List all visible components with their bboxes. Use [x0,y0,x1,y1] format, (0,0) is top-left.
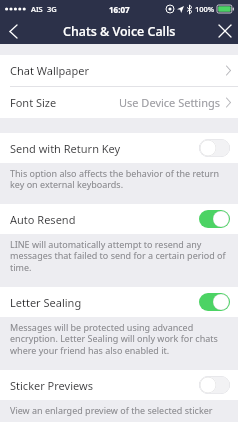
staticText: 3G [47,4,57,14]
button[interactable]: Font Size [0,87,238,118]
staticText: Auto Resend [10,212,76,227]
button[interactable]: On [199,210,230,228]
staticText: Send with Return Key [10,141,121,156]
button[interactable]: Sticker Previews [0,370,238,400]
button[interactable]: Send with Return Key [0,133,238,163]
button[interactable]: Chat Wallpaper [0,55,238,86]
staticText: Chats & Voice Calls [63,23,176,40]
staticText: Letter Sealing [10,295,82,310]
button[interactable]: Letter Sealing [0,287,238,317]
staticText: Chat Wallpaper [10,63,90,78]
staticText: Font Size [10,95,57,110]
button[interactable]: Off [199,376,230,394]
staticText: Messages will be protected using advance… [10,321,228,357]
staticText: AIS [31,4,43,14]
staticText: Use Device Settings [119,95,221,110]
button[interactable]: Auto Resend [0,204,238,234]
button[interactable]: Close [212,18,238,44]
staticText: 16:07 [109,4,130,15]
staticText: View an enlarged preview of the selected… [10,404,228,418]
button[interactable]: Off [199,139,230,157]
staticText: Sticker Previews [10,378,93,393]
button[interactable]: Back [0,18,26,44]
staticText: This option also affects the behavior of… [10,167,228,191]
button[interactable]: On [199,293,230,311]
staticText: 100% [195,4,215,14]
staticText: LINE will automatically attempt to resen… [10,238,228,274]
